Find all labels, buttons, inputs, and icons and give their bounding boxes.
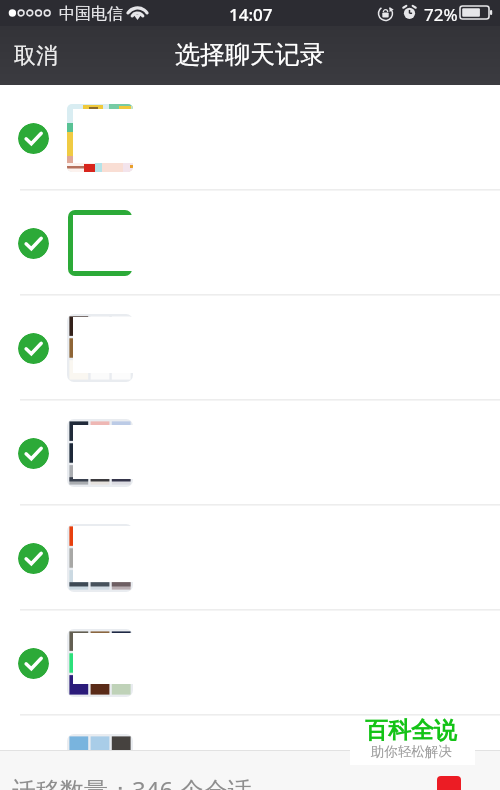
button[interactable]: 已选中，取消选择 — [18, 438, 49, 469]
button[interactable]: 已选中，取消选择 — [0, 611, 500, 716]
button[interactable]: 开始迁移 — [437, 776, 461, 790]
button[interactable]: 已选中，取消选择 — [18, 333, 49, 364]
button[interactable]: 已选中，取消选择 — [0, 86, 500, 191]
button[interactable]: 已选中，取消选择 — [0, 191, 500, 296]
staticText: 中国电信 — [59, 4, 123, 24]
staticText: 取消 — [14, 42, 58, 70]
staticText: 助你轻松解决 — [371, 743, 452, 760]
staticText: 百科全说 — [365, 716, 457, 745]
button[interactable]: 已选中，取消选择 — [0, 296, 500, 401]
button[interactable]: 已选中，取消选择 — [18, 123, 49, 154]
button[interactable]: 已选中，取消选择 — [18, 648, 49, 679]
button[interactable]: 已选中，取消选择 — [18, 228, 49, 259]
staticText: 选择聊天记录 — [175, 39, 325, 70]
button[interactable]: 已选中，取消选择 — [18, 753, 49, 784]
button[interactable]: 已选中，取消选择 — [0, 401, 500, 506]
staticText: 14:07 — [229, 3, 273, 26]
button[interactable]: 已选中，取消选择 — [0, 716, 500, 790]
button[interactable]: 取消 — [0, 32, 74, 80]
staticText: 迁移数量：346 个会话 — [12, 773, 252, 790]
button[interactable]: 已选中，取消选择 — [0, 506, 500, 611]
button[interactable]: 已选中，取消选择 — [18, 543, 49, 574]
staticText: 72% — [424, 3, 458, 26]
